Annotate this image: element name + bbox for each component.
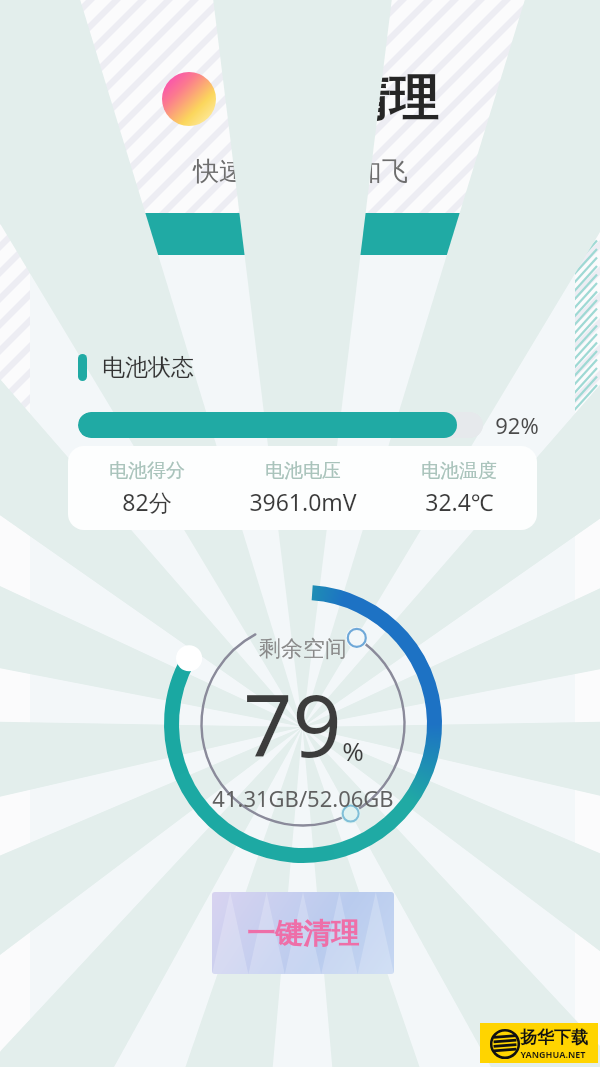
staticText: 电池温度: [421, 459, 497, 483]
button[interactable]: 电池电压: [225, 459, 381, 517]
staticText: 剩余空间: [259, 635, 347, 663]
staticText: 3961.0mV: [249, 486, 357, 517]
staticText: 快速清除 运行如飞: [193, 152, 408, 188]
button[interactable]: 电池得分: [68, 459, 225, 517]
staticText: 一键清理: [242, 68, 438, 130]
button[interactable]: 电池温度: [381, 459, 537, 517]
staticText: 32.4℃: [425, 486, 494, 517]
staticText: 一键清理: [247, 916, 359, 951]
staticText: YANGHUA.NET: [520, 1048, 586, 1060]
staticText: 82分: [122, 486, 172, 517]
staticText: 电池电压: [265, 459, 341, 483]
staticText: 41.31GB/52.06GB: [212, 783, 394, 813]
button[interactable]: 一键清理: [212, 892, 394, 974]
staticText: %: [342, 733, 364, 768]
other: 扬华下载 YANGHUA.NET: [480, 1023, 598, 1063]
staticText: 79: [243, 665, 342, 782]
staticText: 扬华下载: [520, 1027, 588, 1048]
staticText: 92%: [495, 410, 539, 440]
staticText: 电池得分: [109, 459, 185, 483]
staticText: 电池状态: [102, 353, 194, 382]
